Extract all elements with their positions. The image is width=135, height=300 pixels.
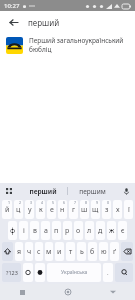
button[interactable]: ?123 — [2, 263, 21, 282]
button[interactable]: я — [15, 242, 23, 261]
staticText: ї — [128, 205, 130, 215]
staticText: ж — [109, 226, 115, 236]
staticText: и — [57, 247, 62, 257]
button[interactable]: Перший загальноукраїнський — [0, 33, 135, 57]
staticText: н — [60, 205, 65, 215]
staticText: першим — [79, 187, 106, 196]
button[interactable]: і — [19, 221, 28, 240]
button[interactable]: 9 — [91, 200, 100, 219]
button[interactable]: ґ — [110, 242, 119, 261]
button[interactable]: а — [41, 221, 50, 240]
button[interactable]: Clipboard — [0, 183, 18, 199]
staticText: є — [121, 226, 125, 236]
button[interactable]: д — [96, 221, 105, 240]
button[interactable]: . — [103, 263, 113, 282]
staticText: 6 — [63, 200, 66, 205]
staticText: а — [44, 226, 48, 236]
button[interactable]: и — [55, 242, 64, 261]
staticText: 9 — [96, 200, 99, 205]
button[interactable]: Voice input — [117, 183, 135, 199]
staticText: ч — [27, 247, 32, 257]
button[interactable]: м — [45, 242, 53, 261]
button[interactable]: Change language — [35, 263, 45, 282]
button[interactable]: ї — [124, 200, 133, 219]
button[interactable]: ж — [107, 221, 116, 240]
staticText: р — [65, 226, 70, 236]
button[interactable]: 5 — [47, 200, 56, 219]
button[interactable]: х — [113, 200, 122, 219]
button[interactable]: Back — [90, 284, 135, 300]
staticText: . — [107, 269, 109, 277]
staticText: к — [39, 205, 43, 215]
button[interactable]: 3 — [25, 200, 34, 219]
staticText: 3 — [30, 200, 33, 205]
button[interactable]: першим — [68, 183, 117, 199]
staticText: 8 — [85, 200, 88, 205]
staticText: 0 — [107, 200, 110, 205]
staticText: 2 — [19, 200, 22, 205]
staticText: х — [116, 205, 120, 215]
staticText: ю — [101, 247, 107, 257]
staticText: 1 — [8, 200, 11, 205]
staticText: і — [23, 226, 25, 236]
button[interactable]: п — [52, 221, 61, 240]
button[interactable]: Emoji — [23, 263, 33, 282]
staticText: д — [98, 226, 103, 236]
button[interactable]: Search — [115, 263, 133, 282]
button[interactable]: 1 — [2, 200, 12, 219]
button[interactable]: є — [118, 221, 127, 240]
staticText: щ — [92, 205, 99, 215]
button[interactable]: т — [66, 242, 75, 261]
staticText: 5 — [52, 200, 55, 205]
staticText: т — [69, 247, 73, 257]
staticText: б — [90, 247, 95, 257]
staticText: 7 — [74, 200, 77, 205]
button[interactable]: Shift — [2, 242, 13, 261]
staticText: г — [72, 205, 76, 215]
staticText: с — [37, 247, 41, 257]
staticText: ф — [10, 226, 16, 236]
button[interactable]: Українська — [47, 263, 101, 282]
button[interactable]: о — [74, 221, 83, 240]
button[interactable]: Recents — [0, 284, 45, 300]
staticText: ?123 — [6, 269, 18, 276]
button[interactable]: перший — [18, 183, 67, 199]
button[interactable]: Back — [0, 11, 135, 33]
button[interactable]: б — [88, 242, 97, 261]
staticText: в — [33, 226, 37, 236]
button[interactable]: 8 — [80, 200, 89, 219]
button[interactable]: 6 — [58, 200, 67, 219]
staticText: ц — [16, 205, 21, 215]
button[interactable]: Home — [45, 284, 90, 300]
staticText: 4 — [41, 200, 44, 205]
staticText: бюбліц — [29, 45, 52, 54]
button[interactable]: в — [30, 221, 39, 240]
button[interactable]: Backspace — [121, 242, 133, 261]
staticText: я — [17, 247, 22, 257]
staticText: у — [28, 205, 32, 215]
button[interactable]: р — [63, 221, 72, 240]
staticText: л — [87, 226, 92, 236]
button[interactable]: ф — [8, 221, 17, 240]
button[interactable]: ч — [25, 242, 33, 261]
button[interactable]: 0 — [102, 200, 111, 219]
staticText: перший — [29, 187, 57, 196]
staticText: м — [46, 247, 52, 257]
staticText: ь — [80, 247, 84, 257]
staticText: е — [50, 205, 54, 215]
button[interactable]: 2 — [14, 200, 23, 219]
button[interactable]: Back — [6, 15, 20, 29]
button[interactable]: 7 — [69, 200, 78, 219]
button[interactable]: ю — [99, 242, 108, 261]
staticText: перший — [28, 17, 60, 28]
button[interactable]: ь — [77, 242, 86, 261]
staticText: й — [5, 205, 10, 215]
staticText: п — [54, 226, 59, 236]
staticText: з — [105, 205, 109, 215]
staticText: ш — [81, 205, 88, 215]
button[interactable]: л — [85, 221, 94, 240]
staticText: Українська — [61, 269, 88, 276]
button[interactable]: 4 — [36, 200, 45, 219]
staticText: Перший загальноукраїнський — [29, 36, 124, 45]
button[interactable]: с — [35, 242, 43, 261]
